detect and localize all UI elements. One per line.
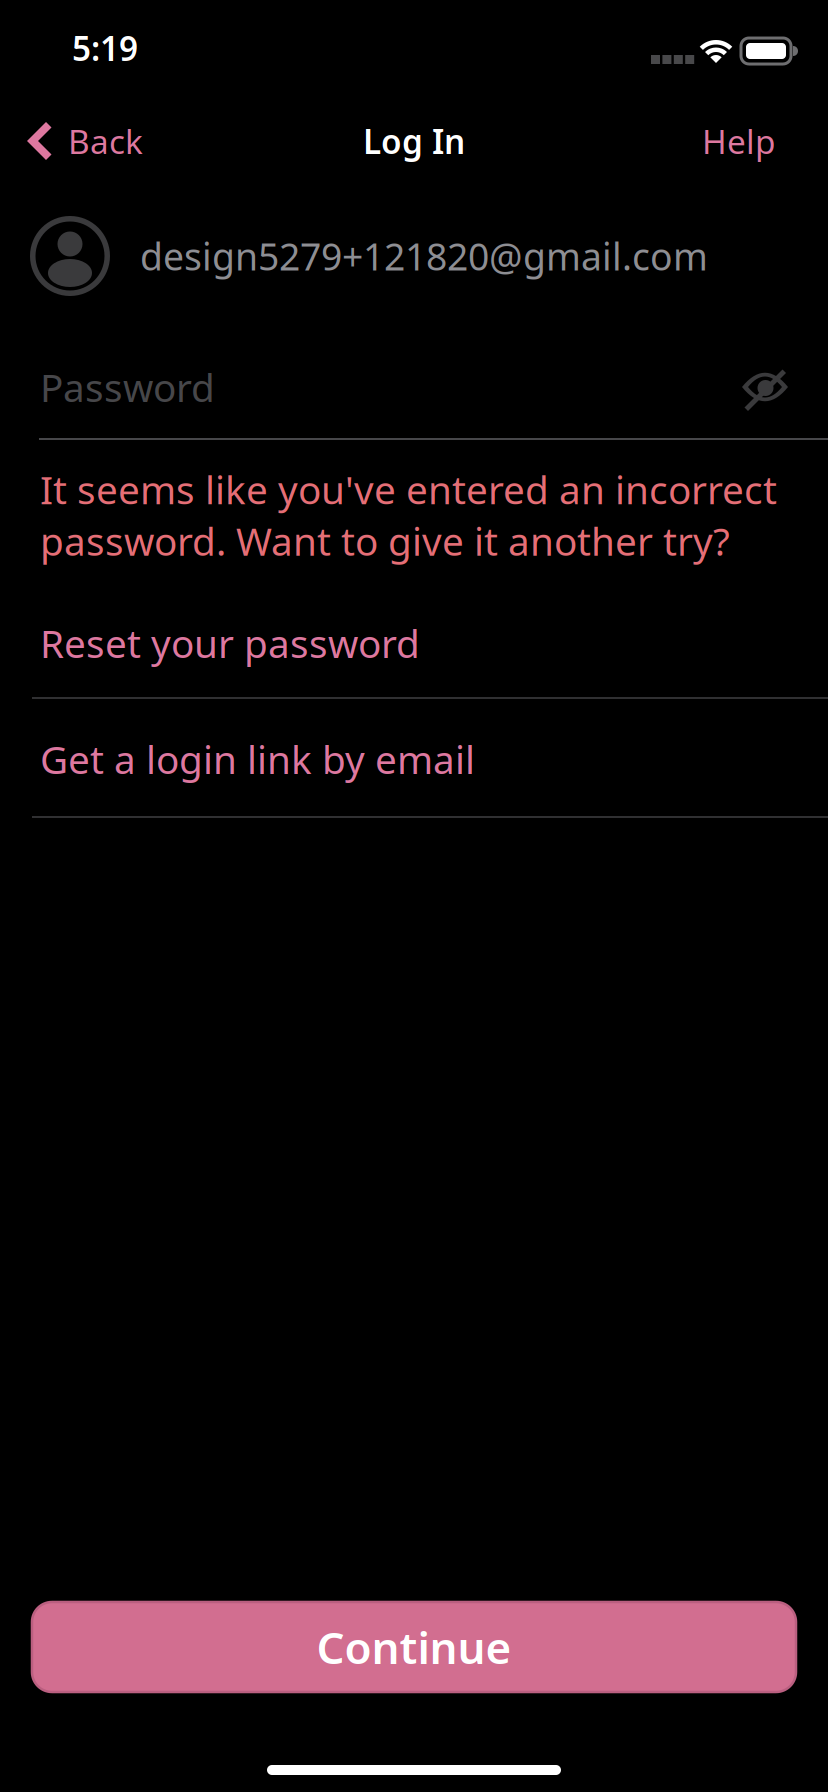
button[interactable]: Reset your password bbox=[40, 619, 420, 667]
button[interactable]: Continue bbox=[32, 1602, 796, 1692]
staticText: 5:19 bbox=[72, 26, 138, 70]
staticText: Back bbox=[68, 119, 143, 163]
button[interactable]: Help bbox=[702, 119, 776, 163]
staticText: Help bbox=[702, 119, 776, 163]
staticText: It seems like you've entered an incorrec… bbox=[40, 464, 777, 566]
button[interactable]: Back bbox=[25, 119, 143, 163]
button[interactable]: Show password bbox=[742, 363, 788, 411]
button[interactable]: Get a login link by email bbox=[40, 735, 475, 783]
staticText: Reset your password bbox=[40, 617, 420, 669]
staticText: Get a login link by email bbox=[40, 733, 475, 785]
staticText: Log In bbox=[363, 119, 465, 163]
staticText: Continue bbox=[316, 1618, 511, 1676]
staticText: design5279+121820@gmail.com bbox=[140, 231, 708, 281]
staticText: Password bbox=[40, 361, 215, 413]
